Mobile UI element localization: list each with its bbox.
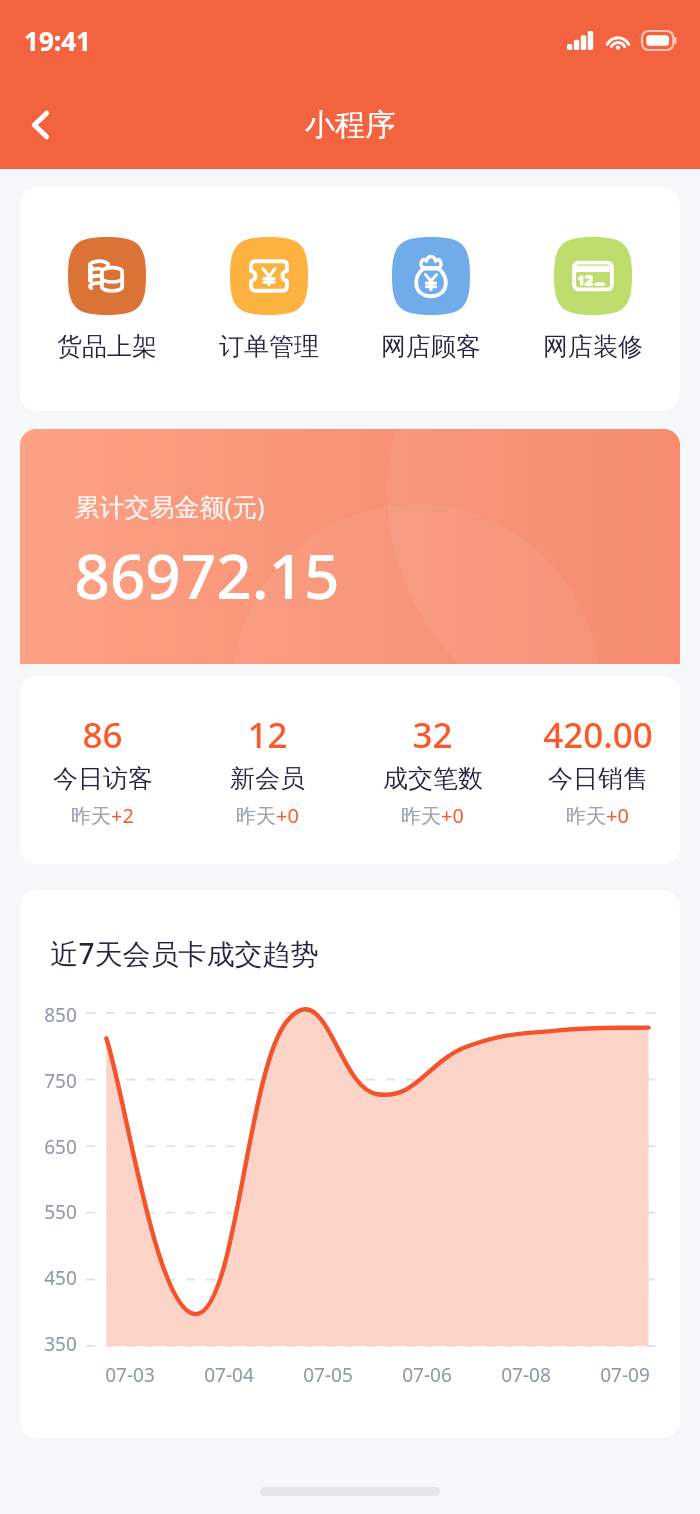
staticText: 650 [44,1134,77,1160]
staticText: 07-05 [303,1362,353,1388]
staticText: 昨天+2 [71,802,134,829]
staticText: 550 [44,1199,77,1225]
staticText: 07-08 [501,1362,551,1388]
staticText: 昨天+0 [236,802,299,829]
staticText: 新会员 [230,763,305,794]
staticText: 累计交易金额(元) [74,489,265,523]
staticText: 07-04 [204,1362,254,1388]
staticText: 32 [412,711,453,759]
button[interactable]: 网店顾客 [350,231,512,368]
staticText: 成交笔数 [383,763,483,794]
staticText: 今日销售 [548,763,648,794]
staticText: 19:41 [24,23,91,58]
staticText: 近7天会员卡成交趋势 [50,934,319,972]
staticText: 750 [44,1068,77,1094]
staticText: 86972.15 [74,533,340,617]
staticText: 小程序 [305,106,395,144]
staticText: 350 [44,1331,77,1357]
staticText: 86 [82,711,123,759]
staticText: 网店顾客 [381,331,481,362]
staticText: 今日访客 [53,763,153,794]
button[interactable]: 32 [350,707,515,833]
staticText: 订单管理 [219,331,319,362]
button[interactable]: 订单管理 [188,231,350,368]
staticText: 昨天+0 [566,802,629,829]
button[interactable]: 网店装修 [512,231,674,368]
staticText: 420.00 [543,711,653,759]
staticText: 07-09 [600,1362,650,1388]
button[interactable]: Back [10,94,72,156]
staticText: 货品上架 [57,331,157,362]
staticText: 450 [44,1265,77,1291]
staticText: 网店装修 [543,331,643,362]
button[interactable]: 420.00 [515,707,680,833]
staticText: 12 [247,711,288,759]
staticText: 昨天+0 [401,802,464,829]
staticText: 850 [44,1002,77,1028]
button[interactable]: 86 [20,707,185,833]
button[interactable]: 12 [185,707,350,833]
staticText: 07-03 [105,1362,155,1388]
button[interactable]: 货品上架 [26,231,188,368]
staticText: 07-06 [402,1362,452,1388]
